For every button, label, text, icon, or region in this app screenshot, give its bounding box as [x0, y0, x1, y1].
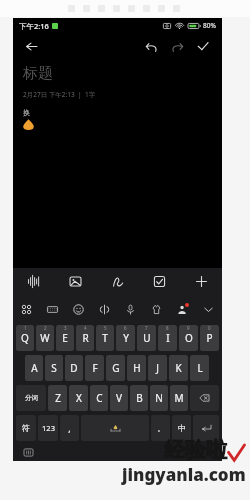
staticText: G: [112, 361, 120, 375]
button[interactable]: Hide keyboard: [21, 445, 35, 459]
staticText: Y: [123, 331, 129, 345]
staticText: 。: [157, 424, 165, 433]
button[interactable]: Checklist: [138, 268, 180, 295]
button[interactable]: L: [190, 355, 209, 381]
staticText: ,: [68, 422, 71, 434]
button[interactable]: Enter: [193, 415, 219, 441]
staticText: F: [92, 361, 98, 375]
staticText: X: [76, 391, 82, 405]
staticText: P: [206, 331, 213, 345]
staticText: W: [40, 331, 50, 345]
button[interactable]: Backspace: [190, 385, 219, 411]
button[interactable]: Q: [16, 325, 34, 351]
button[interactable]: J: [148, 355, 167, 381]
button[interactable]: F: [85, 355, 104, 381]
button[interactable]: X: [69, 385, 88, 411]
button[interactable]: Add: [180, 268, 222, 295]
staticText: Q: [21, 331, 29, 345]
button[interactable]: U: [137, 325, 156, 351]
button[interactable]: Emoji: [65, 295, 91, 323]
staticText: U: [143, 331, 151, 345]
button[interactable]: Voice: [117, 295, 143, 323]
staticText: 中: [178, 423, 186, 433]
staticText: D: [70, 361, 78, 375]
staticText: V: [116, 391, 122, 405]
button[interactable]: 。: [151, 415, 170, 441]
button[interactable]: B: [130, 385, 148, 411]
staticText: E: [62, 331, 68, 345]
button[interactable]: E: [56, 325, 74, 351]
button[interactable]: H: [127, 355, 146, 381]
staticText: K: [175, 361, 182, 375]
button[interactable]: O: [179, 325, 198, 351]
button[interactable]: Redo: [166, 35, 188, 57]
button[interactable]: W: [36, 325, 54, 351]
staticText: 4: [84, 325, 87, 331]
button[interactable]: 符: [16, 415, 36, 441]
button[interactable]: N: [150, 385, 168, 411]
button[interactable]: C: [90, 385, 108, 411]
button[interactable]: S: [45, 355, 63, 381]
button[interactable]: 123: [38, 415, 58, 441]
staticText: 5: [104, 325, 107, 331]
staticText: 80%: [203, 21, 216, 30]
button[interactable]: Collapse: [195, 295, 221, 323]
staticText: 2: [44, 325, 47, 331]
button[interactable]: G: [106, 355, 125, 381]
staticText: 123: [42, 423, 55, 433]
button[interactable]: Z: [48, 385, 67, 411]
button[interactable]: Text tools: [91, 295, 117, 323]
staticText: Z: [55, 391, 61, 405]
button[interactable]: M: [170, 385, 188, 411]
staticText: 8: [166, 325, 169, 331]
staticText: 2月27日 下午2:13 | 1字: [23, 90, 96, 99]
button[interactable]: Input methods: [14, 295, 39, 323]
staticText: I: [166, 331, 170, 345]
staticText: 6: [124, 325, 127, 331]
staticText: H: [133, 361, 141, 375]
button[interactable]: Done: [192, 35, 214, 57]
staticText: T: [102, 331, 108, 345]
button[interactable]: 分词: [16, 385, 46, 411]
button[interactable]: T: [96, 325, 114, 351]
button[interactable]: Back: [21, 36, 41, 56]
button[interactable]: Space: [81, 415, 149, 441]
button[interactable]: 中: [172, 415, 191, 441]
button[interactable]: A: [25, 355, 43, 381]
button[interactable]: Image: [54, 268, 96, 295]
staticText: jingyanla.com: [122, 463, 246, 486]
button[interactable]: D: [65, 355, 83, 381]
button[interactable]: ,: [60, 415, 79, 441]
staticText: 1: [24, 325, 27, 331]
staticText: 经验啦: [164, 437, 227, 463]
button[interactable]: Theme: [143, 295, 169, 323]
button[interactable]: Keyboard: [39, 295, 65, 323]
staticText: 9: [187, 325, 190, 331]
staticText: 分词: [25, 394, 38, 402]
staticText: R: [82, 331, 89, 345]
button[interactable]: R: [76, 325, 94, 351]
staticText: L: [197, 361, 203, 375]
staticText: B: [136, 391, 143, 405]
button[interactable]: Audio: [13, 268, 54, 295]
staticText: 标题: [23, 64, 53, 83]
staticText: A: [31, 361, 38, 375]
staticText: 下午2:16: [19, 21, 49, 31]
button[interactable]: Draw: [96, 268, 138, 295]
button[interactable]: P: [200, 325, 219, 351]
button[interactable]: Account: [169, 295, 195, 323]
staticText: J: [156, 361, 159, 375]
button[interactable]: K: [169, 355, 188, 381]
staticText: N: [155, 391, 163, 405]
button[interactable]: V: [110, 385, 128, 411]
staticText: 7: [145, 325, 148, 331]
staticText: 换: [23, 108, 30, 117]
button[interactable]: Undo: [140, 35, 162, 57]
staticText: C: [96, 391, 103, 405]
button[interactable]: Y: [116, 325, 135, 351]
staticText: S: [51, 361, 57, 375]
staticText: 0: [208, 325, 211, 331]
staticText: M: [174, 391, 184, 405]
staticText: 3: [64, 325, 67, 331]
button[interactable]: I: [158, 325, 177, 351]
